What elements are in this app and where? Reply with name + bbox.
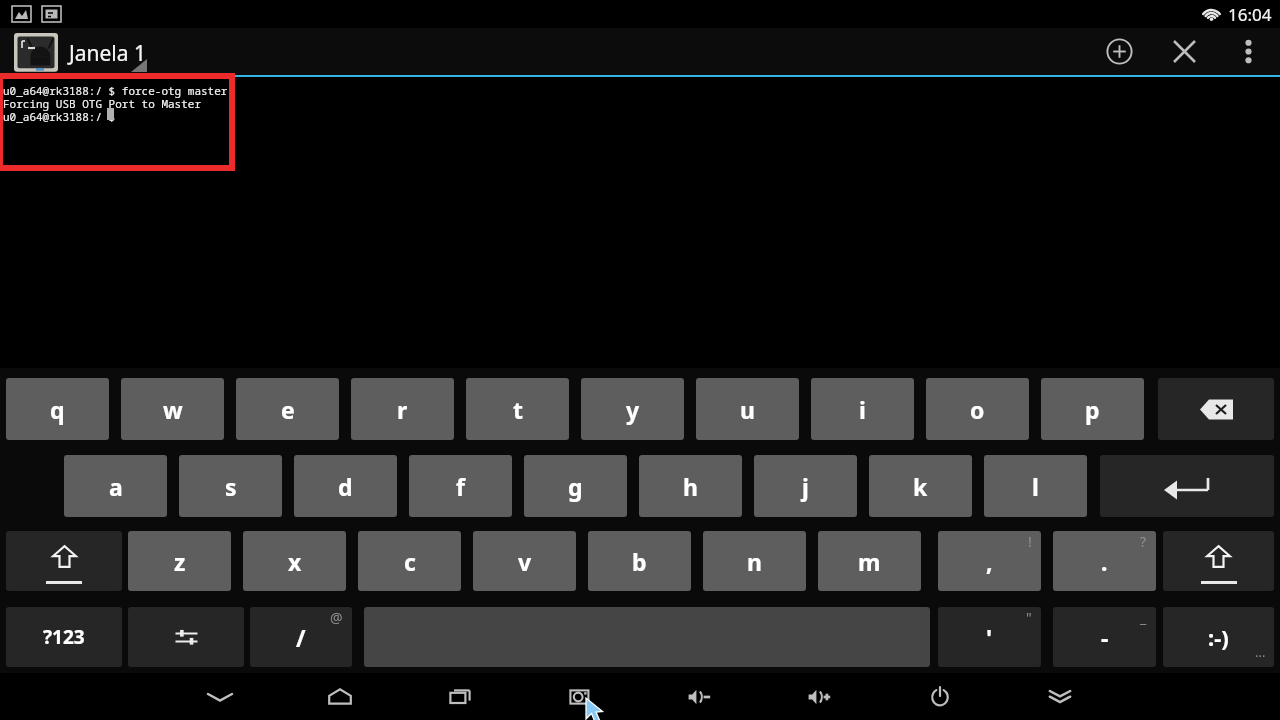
staticText: c xyxy=(404,546,416,577)
button[interactable]: v xyxy=(473,531,576,591)
button[interactable]: New window xyxy=(1096,28,1143,75)
staticText: b xyxy=(632,546,647,577)
button[interactable]: k xyxy=(869,455,972,517)
staticText: y xyxy=(626,394,640,425)
staticText: - xyxy=(1101,622,1109,653)
button[interactable]: s xyxy=(179,455,282,517)
button[interactable]: Enter xyxy=(1100,455,1274,517)
staticText: " xyxy=(1026,608,1032,627)
staticText: 16:04 xyxy=(1228,3,1272,26)
button[interactable]: g xyxy=(524,455,627,517)
button[interactable]: Janela 1 xyxy=(0,28,250,75)
staticText: j xyxy=(802,471,809,502)
staticText: / xyxy=(296,622,306,653)
button[interactable]: Shift xyxy=(6,531,122,591)
button[interactable]: Home xyxy=(316,673,364,720)
button[interactable]: w xyxy=(121,378,224,440)
button[interactable]: l xyxy=(984,455,1087,517)
staticText: @ xyxy=(330,608,343,627)
button[interactable]: Backspace xyxy=(1158,378,1274,440)
button[interactable]: Shift xyxy=(1163,531,1274,591)
staticText: ... xyxy=(1255,643,1266,661)
staticText: x xyxy=(288,546,302,577)
button[interactable]: h xyxy=(639,455,742,517)
button[interactable]: m xyxy=(818,531,921,591)
staticText: z xyxy=(174,546,186,577)
button[interactable]: / xyxy=(250,607,352,667)
staticText: u0_a64@rk3188:/ $ force-otg master xyxy=(3,83,228,98)
staticText: ! xyxy=(1028,532,1032,551)
button[interactable]: j xyxy=(754,455,857,517)
staticText: w xyxy=(163,394,183,425)
button[interactable]: x xyxy=(243,531,346,591)
button[interactable]: y xyxy=(581,378,684,440)
staticText: ' xyxy=(986,622,993,653)
staticText: , xyxy=(986,546,993,577)
button[interactable]: q xyxy=(6,378,109,440)
staticText: g xyxy=(568,471,583,502)
staticText: l xyxy=(1032,471,1039,502)
button[interactable]: Emoticons xyxy=(1163,607,1274,667)
button[interactable]: Hide navigation bar xyxy=(1036,673,1084,720)
staticText: . xyxy=(1101,546,1108,577)
staticText: k xyxy=(913,471,928,502)
button[interactable]: Volume up xyxy=(796,673,844,720)
staticText: i xyxy=(859,394,866,425)
staticText: :-) xyxy=(1208,622,1229,652)
button[interactable]: Close window xyxy=(1161,28,1208,75)
staticText: d xyxy=(338,471,353,502)
button[interactable]: b xyxy=(588,531,691,591)
staticText: p xyxy=(1085,394,1100,425)
staticText: Janela 1 xyxy=(69,39,147,68)
staticText: Forcing USB OTG Port to Master xyxy=(3,96,201,111)
button[interactable]: Screenshot xyxy=(556,673,604,720)
staticText: u xyxy=(740,394,755,425)
staticText: e xyxy=(281,394,295,425)
button[interactable]: o xyxy=(926,378,1029,440)
button[interactable]: ?123 xyxy=(6,607,122,667)
staticText: ? xyxy=(1140,532,1147,551)
button[interactable]: t xyxy=(466,378,569,440)
staticText: s xyxy=(225,471,237,502)
button[interactable]: f xyxy=(409,455,512,517)
button[interactable]: d xyxy=(294,455,397,517)
staticText: q xyxy=(50,394,65,425)
staticText: ?123 xyxy=(43,624,85,650)
staticText: o xyxy=(970,394,985,425)
button[interactable]: p xyxy=(1041,378,1144,440)
button[interactable]: z xyxy=(128,531,231,591)
button[interactable]: Recent apps xyxy=(436,673,484,720)
button[interactable]: , xyxy=(938,531,1041,591)
button[interactable]: ' xyxy=(938,607,1041,667)
button[interactable]: - xyxy=(1053,607,1156,667)
button[interactable]: e xyxy=(236,378,339,440)
button[interactable]: a xyxy=(64,455,167,517)
button[interactable]: Volume down xyxy=(676,673,724,720)
button[interactable]: i xyxy=(811,378,914,440)
staticText: a xyxy=(109,471,123,502)
staticText: v xyxy=(518,546,532,577)
staticText: _ xyxy=(1140,608,1147,627)
staticText: h xyxy=(683,471,698,502)
button[interactable]: c xyxy=(358,531,461,591)
button[interactable]: More options xyxy=(1226,28,1270,75)
staticText: t xyxy=(513,394,523,425)
staticText: f xyxy=(456,471,465,502)
button[interactable]: r xyxy=(351,378,454,440)
staticText: u0_a64@rk3188:/ $ xyxy=(3,109,116,124)
button[interactable]: . xyxy=(1053,531,1156,591)
staticText: n xyxy=(747,546,762,577)
button[interactable]: Power xyxy=(916,673,964,720)
staticText: r xyxy=(397,394,408,425)
button[interactable]: u xyxy=(696,378,799,440)
button[interactable]: Input method settings xyxy=(128,607,244,667)
staticText: m xyxy=(858,546,881,577)
button[interactable]: n xyxy=(703,531,806,591)
button[interactable]: Hide keyboard xyxy=(196,673,244,720)
